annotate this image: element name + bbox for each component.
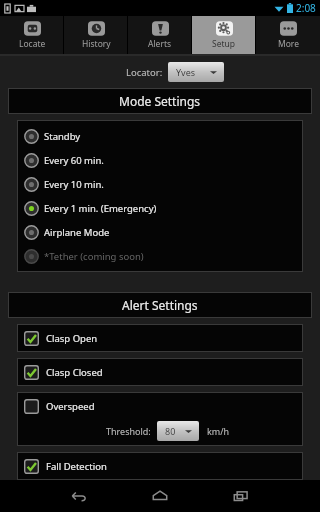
- staticText: Every 10 min.: [44, 178, 104, 191]
- staticText: Threshold:: [106, 425, 151, 437]
- button[interactable]: Alerts: [128, 16, 192, 54]
- staticText: Mode Settings: [119, 93, 201, 109]
- button[interactable]: Recent apps: [224, 480, 258, 512]
- staticText: Airplane Mode: [44, 226, 110, 239]
- button[interactable]: Fall Detection: [18, 453, 302, 479]
- button[interactable]: Every 10 min.: [18, 172, 302, 196]
- button[interactable]: 80: [157, 421, 199, 441]
- staticText: Locate: [19, 38, 46, 50]
- staticText: Alerts: [148, 38, 172, 50]
- button[interactable]: Overspeed: [18, 393, 302, 419]
- staticText: Clasp Closed: [46, 366, 103, 379]
- staticText: 80: [165, 425, 176, 437]
- button[interactable]: Back: [62, 480, 96, 512]
- staticText: Locator:: [126, 66, 163, 79]
- button[interactable]: Setup: [192, 16, 256, 54]
- staticText: Fall Detection: [46, 460, 107, 473]
- staticText: History: [82, 38, 111, 50]
- staticText: 2:08: [296, 1, 316, 15]
- button[interactable]: Yves: [168, 62, 224, 82]
- staticText: Standby: [44, 130, 81, 143]
- staticText: Alert Settings: [122, 297, 198, 313]
- staticText: Yves: [176, 66, 196, 78]
- staticText: Overspeed: [46, 400, 95, 413]
- button[interactable]: Home: [143, 480, 177, 512]
- button[interactable]: Standby: [18, 124, 302, 148]
- staticText: *Tether (coming soon): [44, 250, 144, 263]
- button[interactable]: History: [64, 16, 128, 54]
- button[interactable]: Clasp Open: [18, 325, 302, 351]
- staticText: Clasp Open: [46, 332, 98, 345]
- button[interactable]: Every 60 min.: [18, 148, 302, 172]
- button[interactable]: *Tether (coming soon): [18, 244, 302, 268]
- staticText: More: [278, 38, 299, 50]
- button[interactable]: Airplane Mode: [18, 220, 302, 244]
- button[interactable]: Every 1 min. (Emergency): [18, 196, 302, 220]
- button[interactable]: Locate: [0, 16, 64, 54]
- staticText: Every 1 min. (Emergency): [44, 202, 157, 215]
- staticText: km/h: [207, 425, 230, 437]
- staticText: Setup: [212, 38, 236, 50]
- button[interactable]: More: [256, 16, 320, 54]
- button[interactable]: Clasp Closed: [18, 359, 302, 385]
- staticText: Every 60 min.: [44, 154, 104, 167]
